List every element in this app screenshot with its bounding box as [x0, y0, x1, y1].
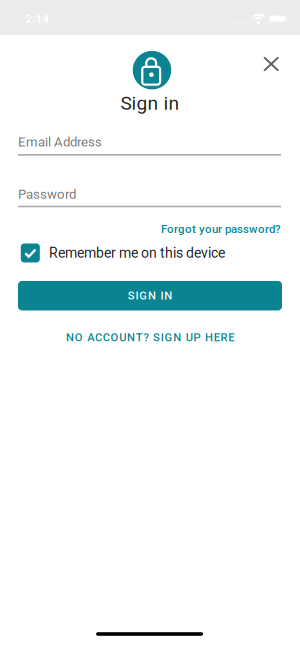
button[interactable]: SIGN IN: [18, 281, 282, 310]
button[interactable]: [257, 50, 285, 78]
button[interactable]: Remember me on this device: [21, 243, 225, 262]
staticText: Sign in: [120, 92, 179, 114]
staticText: SIGN IN: [128, 289, 172, 302]
staticText: NO ACCOUNT? SIGN UP HERE: [66, 331, 234, 344]
staticText: Forgot your password?: [161, 222, 281, 236]
button[interactable]: NO ACCOUNT? SIGN UP HERE: [66, 331, 234, 344]
button[interactable]: Forgot your password?: [161, 222, 281, 236]
staticText: Remember me on this device: [49, 245, 225, 261]
staticText: Password: [18, 187, 76, 202]
staticText: Email Address: [18, 134, 102, 150]
staticText: 2:14: [25, 12, 49, 25]
